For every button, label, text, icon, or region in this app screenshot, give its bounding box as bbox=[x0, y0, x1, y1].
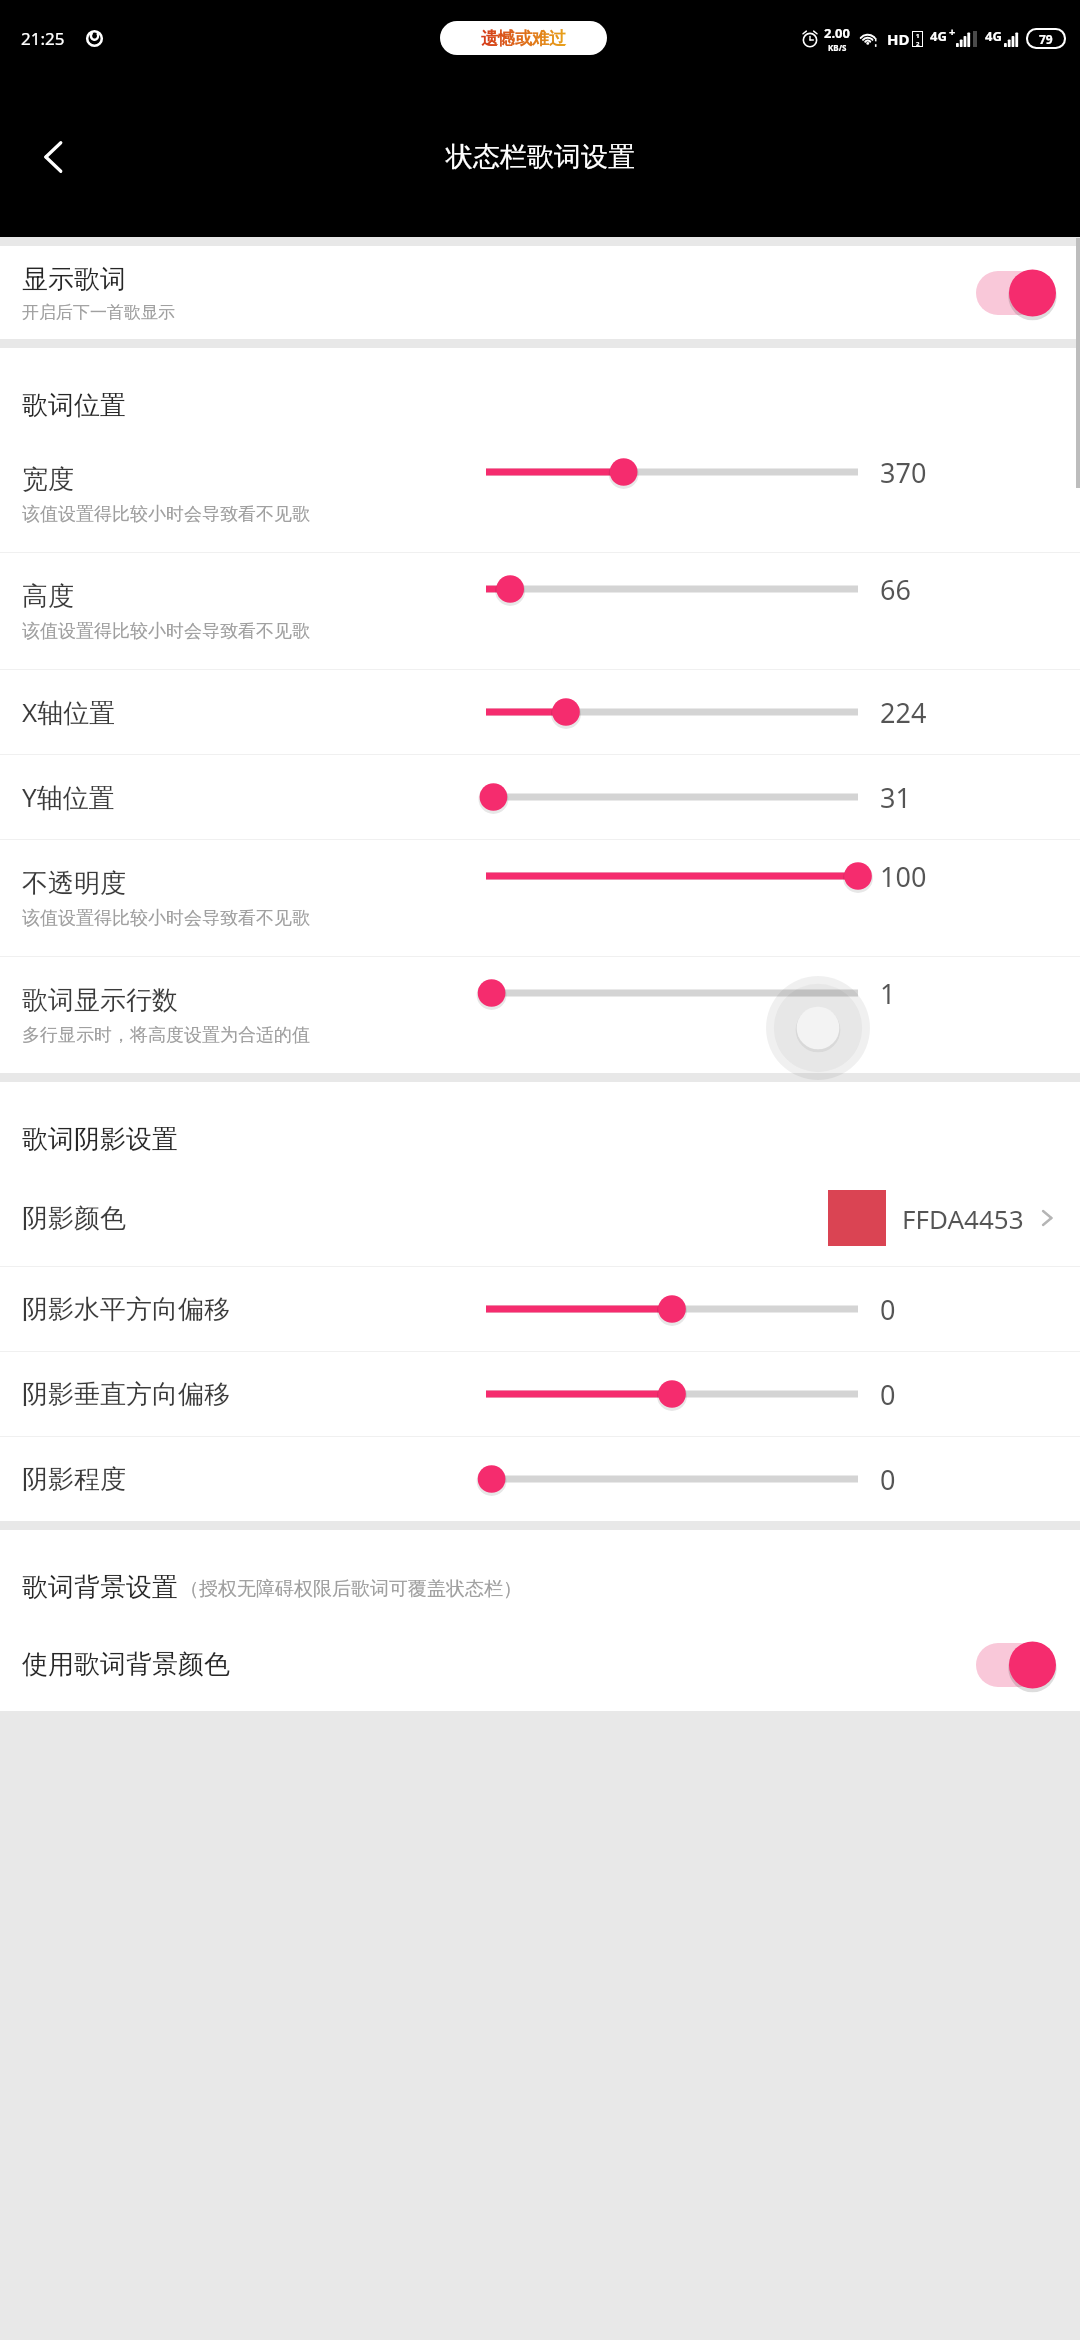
staticText: 阴影垂直方向偏移 bbox=[22, 1378, 230, 1411]
button[interactable]: 不透明度 bbox=[0, 840, 1080, 956]
staticText: 阴影水平方向偏移 bbox=[22, 1293, 230, 1326]
button[interactable]: 阴影水平方向偏移 bbox=[0, 1267, 1080, 1351]
staticText: 66 bbox=[880, 571, 911, 608]
staticText: 4G bbox=[985, 27, 1002, 45]
button[interactable]: 使用歌词背景颜色 bbox=[0, 1618, 1080, 1711]
staticText: 2 bbox=[916, 40, 920, 46]
staticText: KB/S bbox=[828, 42, 847, 53]
staticText: 79 bbox=[1039, 31, 1053, 47]
staticText: + bbox=[949, 24, 956, 39]
staticText: 该值设置得比较小时会导致看不见歌词 bbox=[22, 503, 322, 526]
staticText: 显示歌词 bbox=[22, 263, 126, 296]
staticText: 21:25 bbox=[21, 27, 65, 50]
button[interactable]: Toggle bbox=[974, 1641, 1058, 1689]
staticText: 该值设置得比较小时会导致看不见歌词 bbox=[22, 907, 322, 930]
staticText: X轴位置 bbox=[22, 694, 116, 730]
staticText: （授权无障碍权限后歌词可覆盖状态栏） bbox=[180, 1577, 522, 1601]
button[interactable]: X轴位置 bbox=[0, 670, 1080, 754]
button[interactable]: 阴影颜色 bbox=[0, 1170, 1080, 1266]
staticText: 高度 bbox=[22, 580, 74, 613]
staticText: 31 bbox=[880, 779, 911, 816]
staticText: 该值设置得比较小时会导致看不见歌词 bbox=[22, 620, 322, 643]
staticText: 开启后下一首歌显示 bbox=[22, 302, 175, 323]
staticText: 224 bbox=[880, 694, 927, 731]
staticText: 1 bbox=[880, 975, 896, 1012]
staticText: 0 bbox=[880, 1291, 896, 1328]
button[interactable]: 宽度 bbox=[0, 436, 1080, 552]
button[interactable]: 阴影垂直方向偏移 bbox=[0, 1352, 1080, 1436]
staticText: 阴影程度 bbox=[22, 1463, 126, 1496]
staticText: 370 bbox=[880, 454, 927, 491]
staticText: 宽度 bbox=[22, 463, 74, 496]
staticText: 0 bbox=[880, 1461, 896, 1498]
button[interactable]: Back bbox=[18, 121, 90, 193]
staticText: 4G bbox=[930, 27, 947, 45]
staticText: 歌词背景设置 bbox=[22, 1571, 178, 1604]
staticText: 遗憾或难过 bbox=[481, 28, 566, 49]
button[interactable]: 歌词显示行数 bbox=[0, 957, 1080, 1073]
staticText: FFDA4453 bbox=[902, 1201, 1024, 1236]
staticText: 使用歌词背景颜色 bbox=[22, 1648, 974, 1681]
button[interactable]: 阴影程度 bbox=[0, 1437, 1080, 1521]
button[interactable]: 显示歌词 bbox=[0, 246, 1080, 339]
button[interactable]: Y轴位置 bbox=[0, 755, 1080, 839]
staticText: 0 bbox=[880, 1376, 896, 1413]
staticText: 1 bbox=[916, 32, 920, 40]
staticText: 歌词阴影设置 bbox=[22, 1123, 178, 1156]
staticText: 不透明度 bbox=[22, 867, 126, 900]
staticText: 2.00 bbox=[824, 24, 850, 42]
staticText: Y轴位置 bbox=[22, 779, 115, 815]
staticText: 歌词显示行数 bbox=[22, 984, 178, 1017]
staticText: 多行显示时，将高度设置为合适的值才能将歌词显示完整 bbox=[22, 1024, 322, 1047]
button[interactable]: 高度 bbox=[0, 553, 1080, 669]
staticText: HD bbox=[887, 29, 910, 49]
staticText: 100 bbox=[880, 858, 927, 895]
staticText: 阴影颜色 bbox=[22, 1202, 828, 1235]
staticText: 歌词位置 bbox=[22, 389, 126, 422]
button[interactable]: Toggle bbox=[974, 269, 1058, 317]
staticText: 状态栏歌词设置 bbox=[446, 140, 635, 174]
